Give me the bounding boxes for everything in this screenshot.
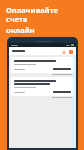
button[interactable] [11,77,74,96]
button[interactable]: Next [68,49,73,54]
button[interactable]: Download [61,49,66,54]
staticText: онлайн [6,25,35,35]
button[interactable] [11,57,74,73]
staticText: Оплачивайте счета [6,5,80,25]
